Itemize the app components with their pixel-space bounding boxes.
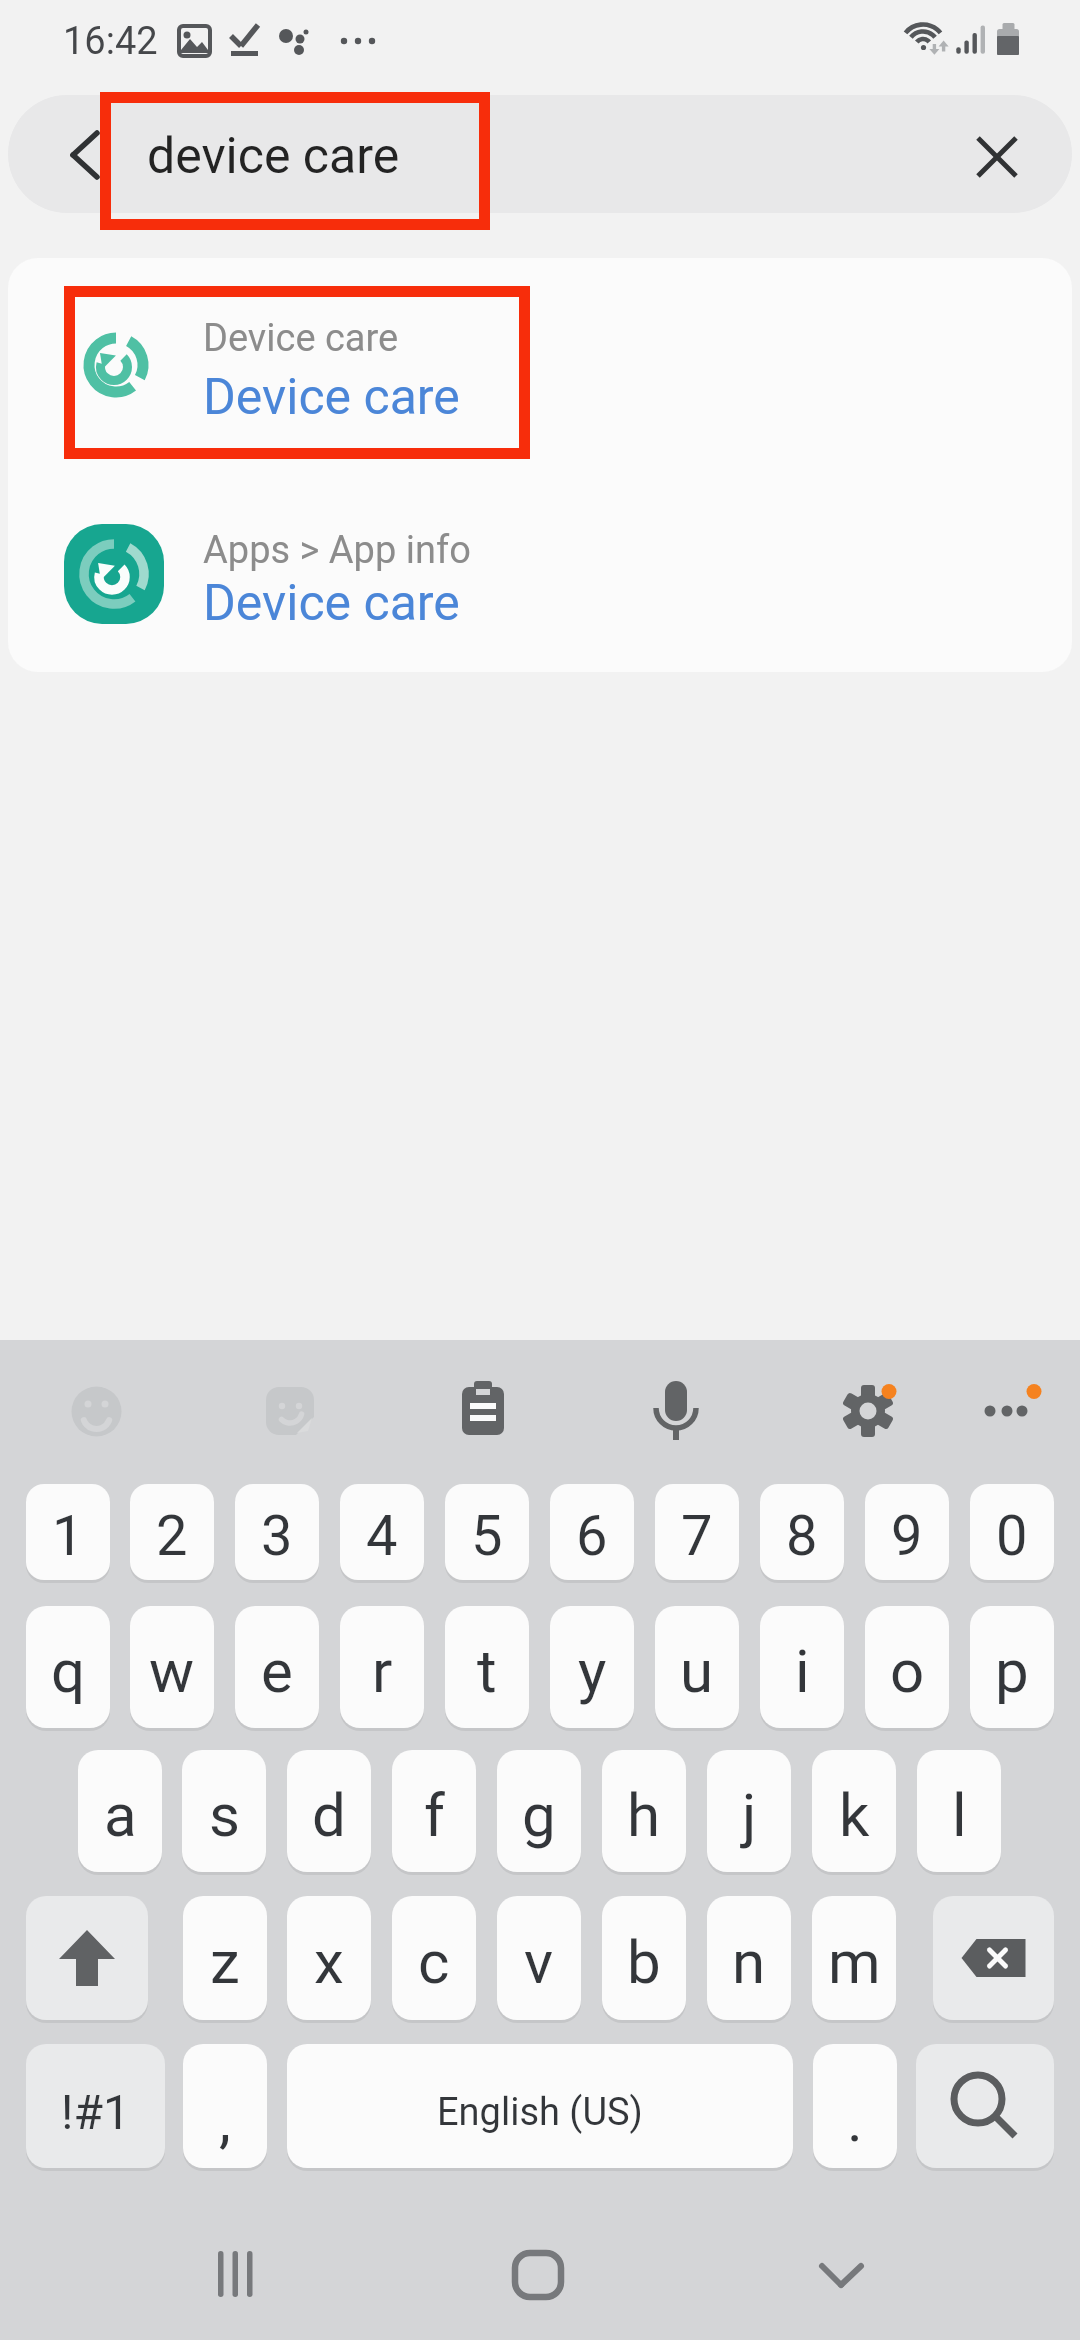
button[interactable] <box>71 1386 122 1437</box>
button[interactable]: t <box>445 1606 529 1728</box>
staticText: e <box>261 1636 293 1706</box>
staticText: j <box>742 1780 757 1850</box>
button[interactable]: e <box>235 1606 319 1728</box>
button[interactable]: d <box>287 1750 371 1872</box>
staticText: m <box>828 1927 881 1997</box>
staticText: 2 <box>156 1503 188 1569</box>
staticText: l <box>952 1780 967 1850</box>
button[interactable]: , <box>183 2044 267 2168</box>
button[interactable]: p <box>970 1606 1054 1728</box>
button[interactable]: y <box>550 1606 634 1728</box>
staticText: d <box>312 1780 346 1850</box>
button[interactable] <box>55 125 115 185</box>
button[interactable]: b <box>602 1896 686 2020</box>
button[interactable] <box>933 1896 1054 2020</box>
staticText: r <box>372 1636 393 1706</box>
button[interactable]: w <box>130 1606 214 1728</box>
button[interactable]: 9 <box>865 1484 949 1580</box>
button[interactable]: z <box>183 1896 267 2020</box>
button[interactable] <box>967 127 1027 187</box>
button[interactable]: a <box>78 1750 162 1872</box>
button[interactable]: 0 <box>970 1484 1054 1580</box>
staticText: x <box>314 1927 344 1997</box>
button[interactable]: l <box>917 1750 1001 1872</box>
button[interactable]: s <box>182 1750 266 1872</box>
button[interactable]: !#1 <box>26 2044 165 2168</box>
staticText: 0 <box>996 1503 1028 1569</box>
button[interactable] <box>8 466 1072 666</box>
button[interactable] <box>791 2222 891 2322</box>
button[interactable]: f <box>392 1750 476 1872</box>
button[interactable]: g <box>497 1750 581 1872</box>
button[interactable]: m <box>812 1896 896 2020</box>
button[interactable]: c <box>392 1896 476 2020</box>
button[interactable]: n <box>707 1896 791 2020</box>
staticText: . <box>847 2085 863 2155</box>
staticText: 9 <box>891 1503 923 1569</box>
button[interactable] <box>916 2044 1054 2168</box>
button[interactable] <box>26 1896 148 2020</box>
staticText: 4 <box>366 1503 398 1569</box>
button[interactable]: q <box>26 1606 110 1728</box>
button[interactable] <box>266 1387 315 1436</box>
button[interactable] <box>462 1381 504 1437</box>
button[interactable]: 7 <box>655 1484 739 1580</box>
staticText: 6 <box>576 1503 608 1569</box>
staticText: p <box>995 1636 1029 1706</box>
staticText: 1 <box>52 1503 84 1569</box>
staticText: device care <box>147 127 400 186</box>
staticText: Device care <box>203 368 460 427</box>
button[interactable]: k <box>812 1750 896 1872</box>
button[interactable]: x <box>287 1896 371 2020</box>
button[interactable]: o <box>865 1606 949 1728</box>
staticText: q <box>51 1636 86 1706</box>
staticText: 3 <box>261 1503 293 1569</box>
button[interactable] <box>8 266 1072 466</box>
button[interactable]: 6 <box>550 1484 634 1580</box>
staticText: w <box>149 1636 195 1706</box>
button[interactable]: j <box>707 1750 791 1872</box>
staticText: t <box>477 1636 497 1706</box>
staticText: , <box>219 2085 231 2155</box>
button[interactable]: 2 <box>130 1484 214 1580</box>
button[interactable]: i <box>760 1606 844 1728</box>
staticText: !#1 <box>61 2084 130 2140</box>
button[interactable]: 1 <box>26 1484 110 1580</box>
button[interactable]: 3 <box>235 1484 319 1580</box>
staticText: u <box>680 1636 714 1706</box>
button[interactable] <box>187 2222 287 2322</box>
staticText: a <box>104 1780 137 1850</box>
staticText: k <box>839 1780 870 1850</box>
staticText: Device care <box>203 316 399 361</box>
button[interactable]: 5 <box>445 1484 529 1580</box>
staticText: v <box>524 1927 554 1997</box>
staticText: z <box>210 1927 240 1997</box>
button[interactable] <box>984 1384 1042 1418</box>
staticText: English (US) <box>437 2090 643 2135</box>
staticText: 7 <box>681 1503 713 1569</box>
staticText: g <box>522 1780 556 1850</box>
button[interactable] <box>652 1381 700 1441</box>
button[interactable]: r <box>340 1606 424 1728</box>
button[interactable]: . <box>813 2044 897 2168</box>
staticText: y <box>578 1636 607 1706</box>
button[interactable] <box>488 2222 588 2322</box>
button[interactable]: 4 <box>340 1484 424 1580</box>
staticText: o <box>890 1636 925 1706</box>
staticText: Apps > App info <box>203 528 471 573</box>
button[interactable] <box>8 95 1072 213</box>
staticText: 8 <box>786 1503 818 1569</box>
staticText: b <box>627 1927 661 1997</box>
button[interactable]: English (US) <box>287 2044 793 2168</box>
button[interactable]: v <box>497 1896 581 2020</box>
button[interactable]: u <box>655 1606 739 1728</box>
button[interactable]: 8 <box>760 1484 844 1580</box>
button[interactable] <box>842 1385 898 1437</box>
staticText: n <box>732 1927 766 1997</box>
staticText: c <box>418 1927 450 1997</box>
staticText: h <box>627 1780 661 1850</box>
staticText: Device care <box>203 574 460 633</box>
button[interactable]: h <box>602 1750 686 1872</box>
staticText: i <box>795 1636 810 1706</box>
staticText: 5 <box>471 1503 503 1569</box>
